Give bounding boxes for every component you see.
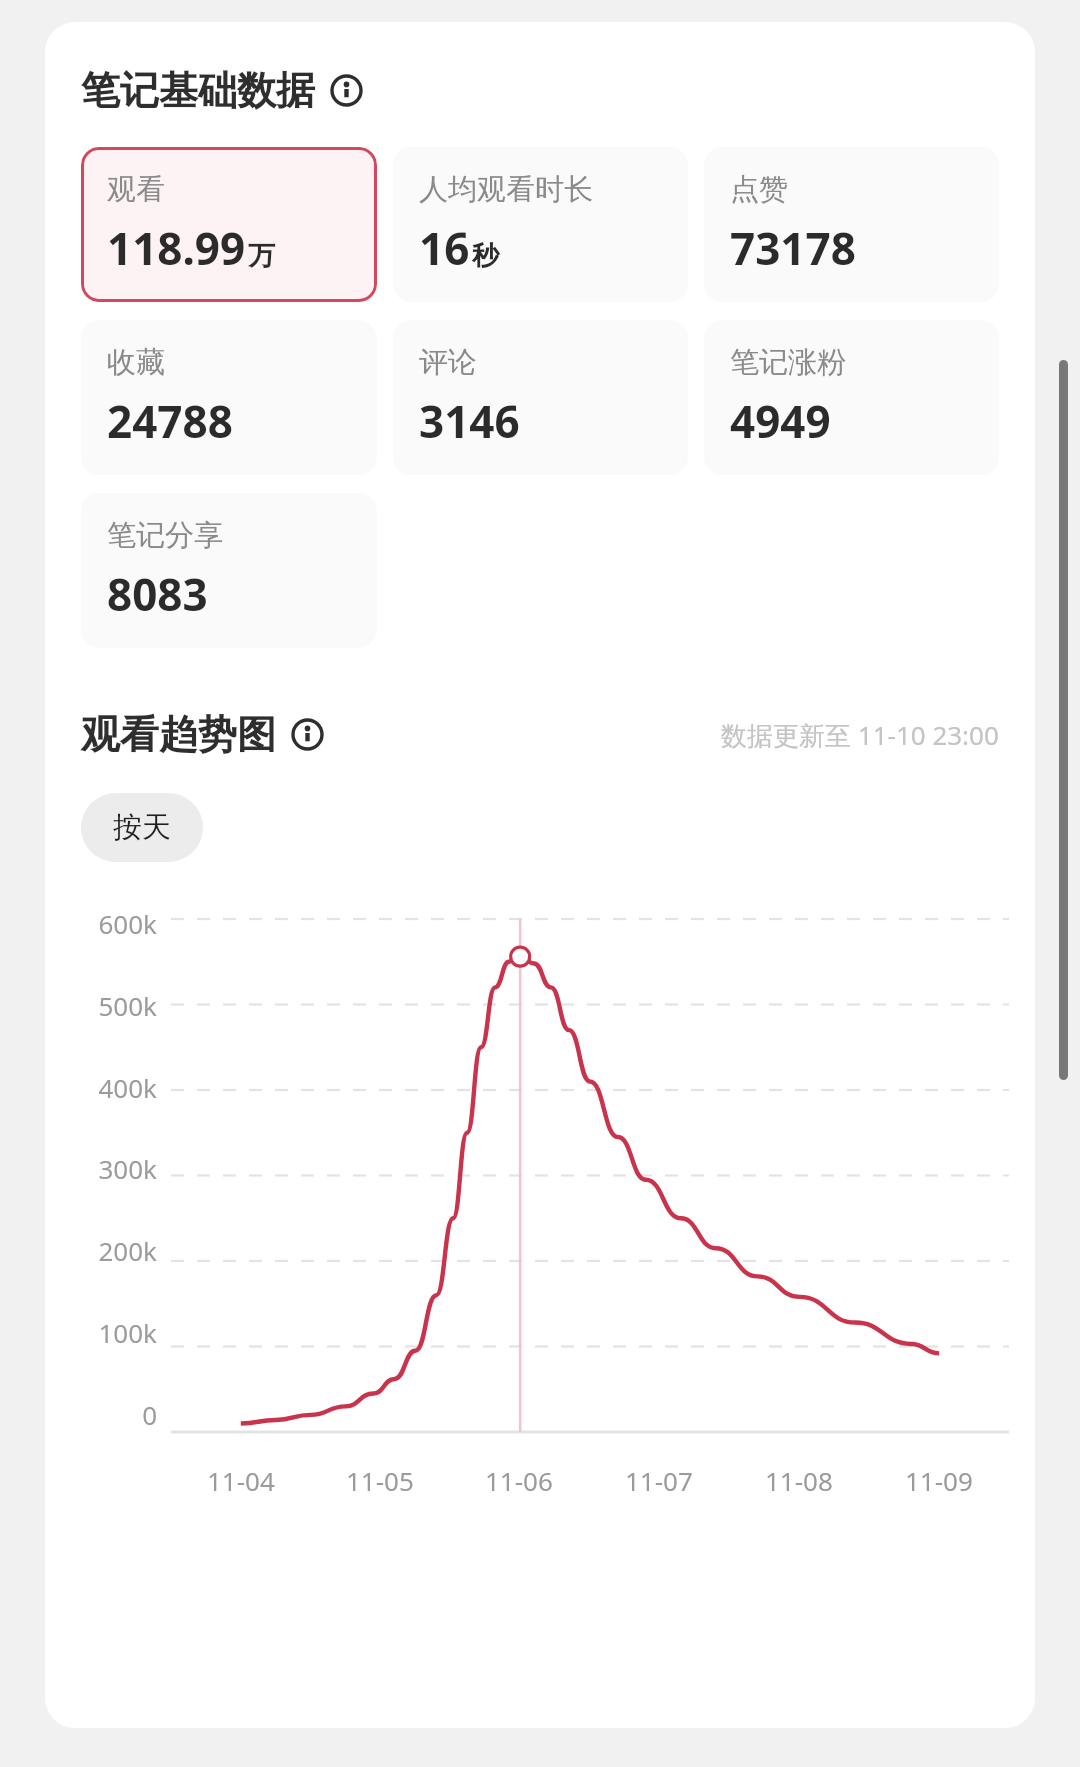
staticText: 24788 xyxy=(107,391,233,451)
staticText: 400k xyxy=(73,1070,157,1105)
button[interactable]: 观看 xyxy=(81,147,377,302)
staticText: 100k xyxy=(73,1315,157,1350)
button[interactable]: 按天 xyxy=(81,793,203,862)
staticText: 数据更新至 11-10 23:00 xyxy=(721,717,999,753)
staticText: 11-06 xyxy=(485,1463,553,1498)
staticText: 8083 xyxy=(107,564,208,624)
button[interactable]: Info xyxy=(330,74,363,107)
staticText: 300k xyxy=(73,1151,157,1186)
button[interactable]: 笔记分享 xyxy=(81,493,377,648)
staticText: 11-07 xyxy=(625,1463,693,1498)
staticText: 收藏 xyxy=(107,344,165,381)
staticText: 11-04 xyxy=(207,1463,275,1498)
staticText: 人均观看时长 xyxy=(419,171,593,208)
staticText: 秒 xyxy=(472,239,499,273)
staticText: 观看趋势图 xyxy=(81,710,276,759)
button[interactable]: 评论 xyxy=(393,320,688,475)
staticText: 万 xyxy=(248,239,275,273)
staticText: 11-05 xyxy=(346,1463,414,1498)
button[interactable]: 点赞 xyxy=(704,147,999,302)
staticText: 11-08 xyxy=(765,1463,833,1498)
staticText: 0 xyxy=(73,1397,157,1432)
staticText: 500k xyxy=(73,988,157,1023)
staticText: 笔记涨粉 xyxy=(730,344,846,381)
staticText: 200k xyxy=(73,1233,157,1268)
staticText: 按天 xyxy=(113,809,171,846)
staticText: 评论 xyxy=(419,344,477,381)
staticText: 3146 xyxy=(419,391,520,451)
staticText: 笔记分享 xyxy=(107,517,223,554)
button[interactable]: 笔记涨粉 xyxy=(704,320,999,475)
staticText: 11-09 xyxy=(905,1463,973,1498)
staticText: 4949 xyxy=(730,391,831,451)
staticText: 73178 xyxy=(730,218,856,278)
staticText: 笔记基础数据 xyxy=(81,66,315,115)
staticText: 600k xyxy=(73,906,157,941)
staticText: 118.99 xyxy=(107,218,246,278)
button[interactable]: 收藏 xyxy=(81,320,377,475)
button[interactable]: 人均观看时长 xyxy=(393,147,688,302)
button[interactable]: Info xyxy=(291,718,324,751)
staticText: 16 xyxy=(419,218,470,278)
staticText: 点赞 xyxy=(730,171,788,208)
staticText: 观看 xyxy=(107,171,165,208)
